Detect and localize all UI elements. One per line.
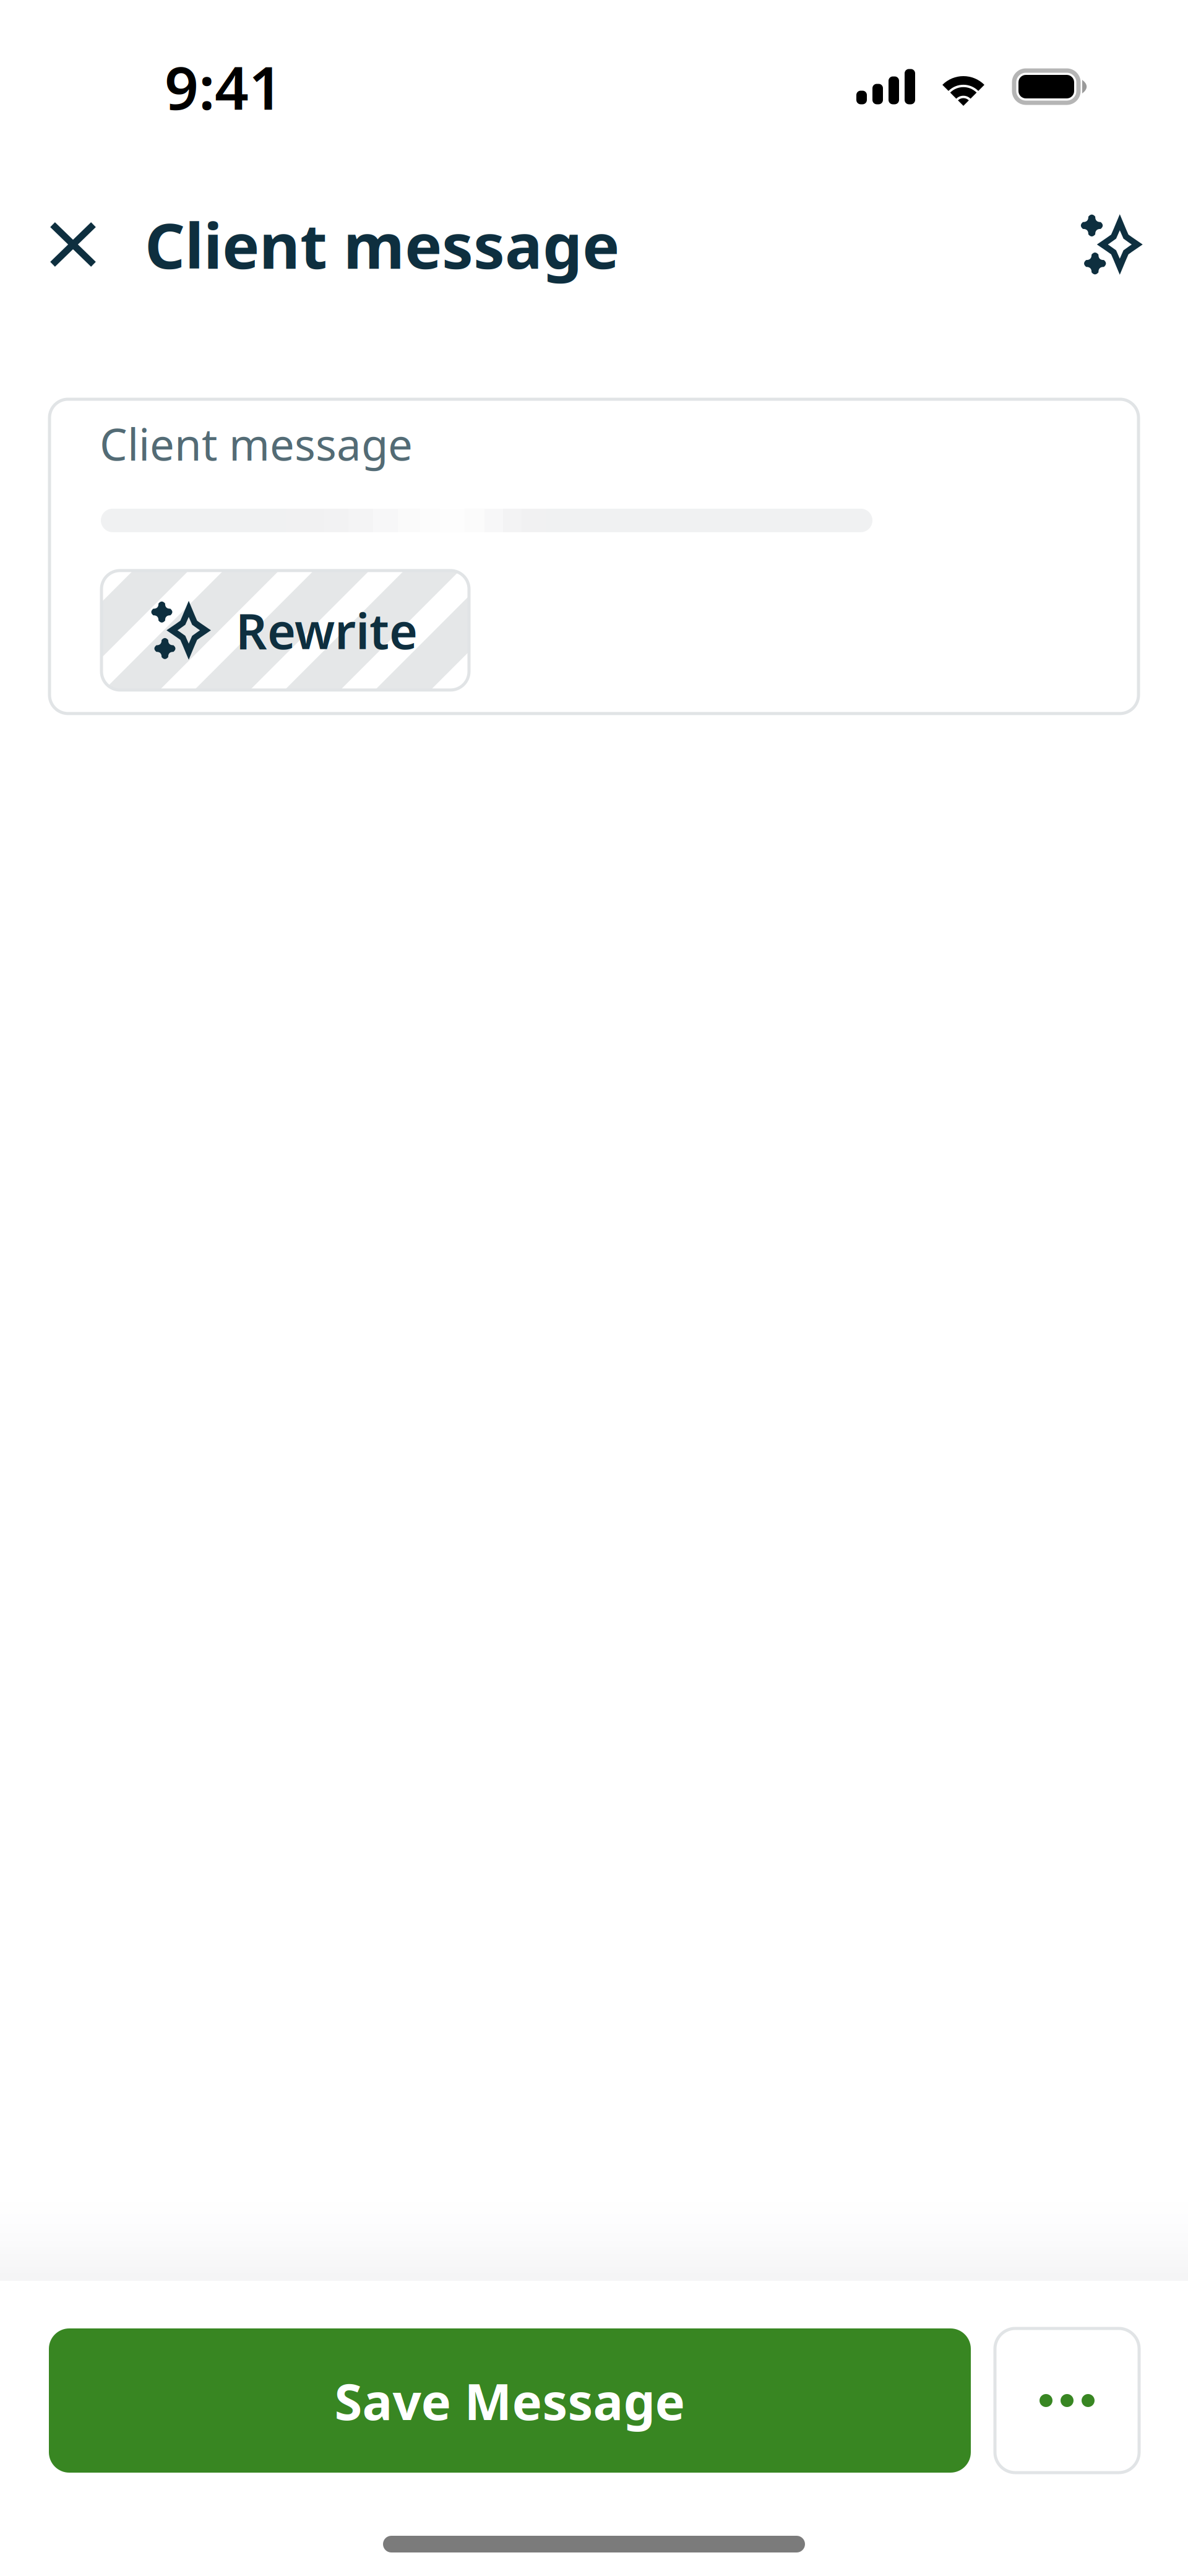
button[interactable]: Save Message xyxy=(49,2328,971,2473)
button[interactable]: Rewrite xyxy=(101,571,469,690)
staticText: 9:41 xyxy=(165,47,283,126)
staticText: Client message xyxy=(145,203,619,286)
staticText: Client message xyxy=(100,415,413,473)
button[interactable]: Close xyxy=(35,197,111,292)
button[interactable]: AI assistant xyxy=(1061,196,1155,293)
staticText: Rewrite xyxy=(236,598,418,663)
button[interactable]: More options xyxy=(995,2328,1139,2473)
staticText: Save Message xyxy=(334,2367,685,2434)
